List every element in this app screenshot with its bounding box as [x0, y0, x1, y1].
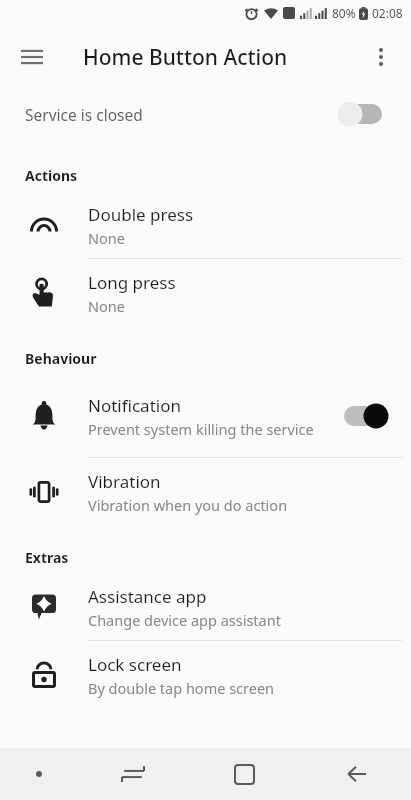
- staticText: Double press: [88, 203, 194, 226]
- staticText: Lock screen: [88, 653, 182, 676]
- button[interactable]: Double press: [0, 191, 411, 259]
- staticText: Assistance app: [88, 585, 207, 608]
- button[interactable]: More options: [359, 35, 403, 79]
- staticText: 02:08: [372, 5, 403, 21]
- button[interactable]: Recents: [78, 748, 188, 800]
- button[interactable]: Home: [188, 748, 301, 800]
- staticText: None: [88, 296, 125, 316]
- staticText: Service is closed: [25, 104, 143, 125]
- staticText: None: [88, 228, 125, 248]
- button[interactable]: Vibration: [0, 458, 411, 526]
- staticText: Prevent system killing the service: [88, 419, 314, 439]
- staticText: Vibration when you do action: [88, 495, 288, 515]
- staticText: By double tap home screen: [88, 678, 275, 698]
- staticText: Notification: [88, 394, 181, 417]
- staticText: Long press: [88, 271, 176, 294]
- staticText: Vibration: [88, 470, 161, 493]
- button[interactable]: Lock screen: [0, 641, 411, 709]
- staticText: Behaviour: [25, 349, 97, 368]
- button[interactable]: Assistance app: [0, 573, 411, 641]
- staticText: 80%: [332, 5, 356, 21]
- button[interactable]: Menu: [10, 35, 54, 79]
- button[interactable]: Long press: [0, 259, 411, 327]
- button[interactable]: Notification: [0, 374, 411, 458]
- staticText: Change device app assistant: [88, 610, 281, 630]
- staticText: Extras: [25, 548, 69, 567]
- button[interactable]: Back: [301, 748, 411, 800]
- staticText: Home Button Action: [83, 43, 288, 72]
- staticText: Actions: [25, 166, 78, 185]
- button[interactable]: Service is closed: [0, 88, 411, 140]
